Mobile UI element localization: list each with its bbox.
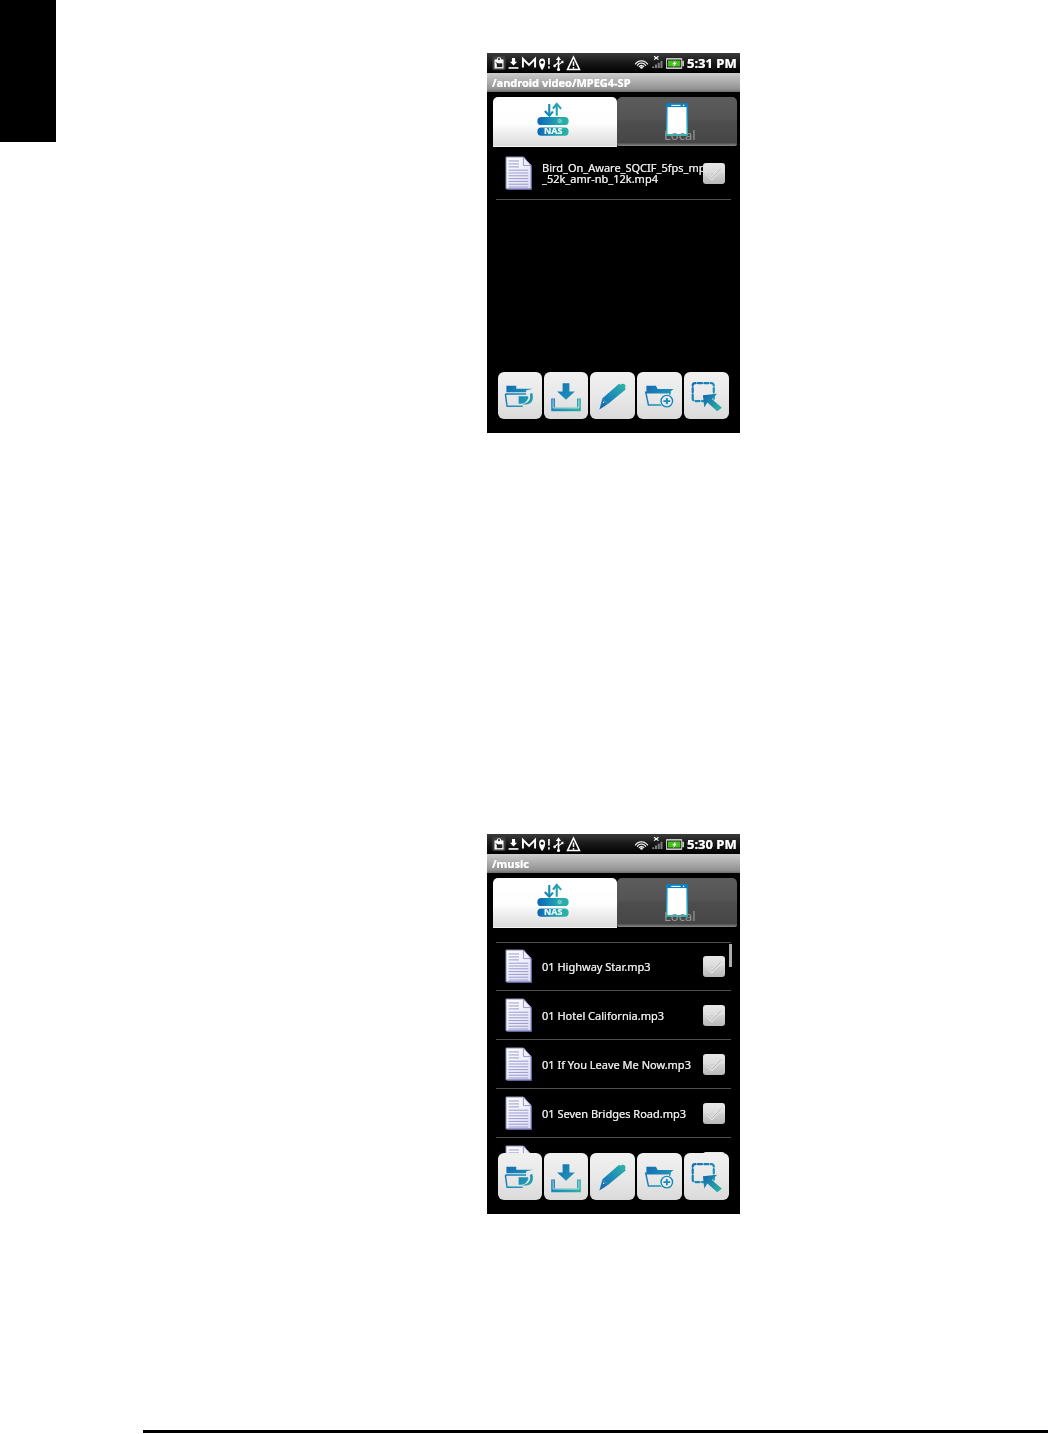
staticText: /music: [492, 856, 529, 871]
button[interactable]: 01 Highway Star.mp3: [487, 943, 740, 990]
button[interactable]: Download: [544, 372, 588, 419]
staticText: NAS: [544, 905, 563, 917]
button[interactable]: Select file: [703, 163, 725, 184]
staticText: 01 Highway Star.mp3: [542, 959, 739, 974]
button[interactable]: NAS: [493, 97, 617, 147]
staticText: 5:31 PM: [687, 54, 737, 72]
button[interactable]: Select file: [703, 1005, 725, 1026]
button[interactable]: Bird_On_Aware_SQCIF_5fps_mp _52k_amr-nb_…: [487, 147, 740, 199]
button[interactable]: Select file: [703, 1103, 725, 1124]
button[interactable]: Rename: [590, 372, 635, 419]
staticText: 01 If You Leave Me Now.mp3: [542, 1057, 739, 1072]
button[interactable]: Download: [544, 1153, 588, 1200]
button[interactable]: Copy to folder: [498, 372, 542, 419]
button[interactable]: Select file: [703, 1152, 725, 1173]
staticText: Local: [664, 126, 696, 144]
button[interactable]: 01 Seven Bridges Road.mp3: [487, 1089, 740, 1137]
staticText: 01 Hotel California.mp3: [542, 1008, 739, 1023]
button[interactable]: 01 Hotel California.mp3: [487, 991, 740, 1039]
button[interactable]: Local: [617, 878, 737, 927]
button[interactable]: New folder: [637, 1153, 682, 1200]
button[interactable]: Copy to folder: [498, 1153, 542, 1200]
button[interactable]: Local: [617, 97, 737, 146]
button[interactable]: Rename: [590, 1153, 635, 1200]
button[interactable]: NAS: [493, 878, 617, 928]
button[interactable]: Select file: [703, 1054, 725, 1075]
staticText: 01 Take It Easy.mp3: [542, 1155, 739, 1170]
staticText: 01 Seven Bridges Road.mp3: [542, 1106, 739, 1121]
button[interactable]: 01 Take It Easy.mp3: [487, 1138, 740, 1186]
staticText: Local: [664, 907, 696, 925]
button[interactable]: Select: [684, 1153, 729, 1200]
staticText: Bird_On_Aware_SQCIF_5fps_mp _52k_amr-nb_…: [542, 160, 739, 187]
button[interactable]: New folder: [637, 372, 682, 419]
staticText: NAS: [544, 124, 563, 136]
button[interactable]: 01 If You Leave Me Now.mp3: [487, 1040, 740, 1088]
button[interactable]: Select file: [703, 956, 725, 977]
button[interactable]: Select: [684, 372, 729, 419]
staticText: 5:30 PM: [687, 835, 737, 853]
staticText: /android video/MPEG4-SP: [492, 75, 631, 90]
